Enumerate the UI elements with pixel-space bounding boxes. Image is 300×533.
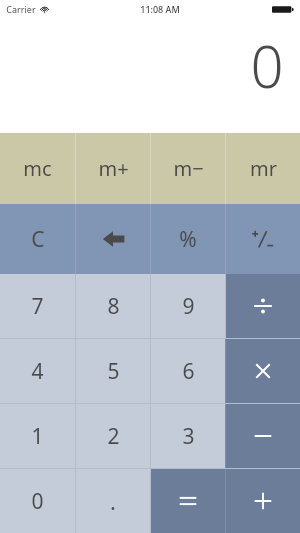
staticText: 1 bbox=[31, 422, 44, 451]
button[interactable]: 9 bbox=[151, 274, 225, 338]
button[interactable]: 5 bbox=[76, 339, 150, 403]
staticText: 2 bbox=[107, 422, 120, 451]
button[interactable]: 1 bbox=[0, 404, 75, 468]
button[interactable]: m+ bbox=[76, 133, 150, 204]
staticText: 6 bbox=[182, 357, 195, 386]
staticText: . bbox=[110, 486, 116, 516]
staticText: 9 bbox=[182, 292, 195, 321]
staticText: mr bbox=[250, 155, 277, 182]
staticText: % bbox=[179, 225, 197, 254]
staticText: Carrier bbox=[6, 3, 36, 15]
button[interactable]: Add bbox=[226, 469, 300, 533]
button[interactable]: C bbox=[0, 204, 75, 274]
staticText: 5 bbox=[107, 357, 120, 386]
button[interactable]: mc bbox=[0, 133, 75, 204]
button[interactable]: 3 bbox=[151, 404, 225, 468]
staticText: 8 bbox=[107, 292, 120, 321]
button[interactable]: Multiply bbox=[226, 339, 300, 403]
button[interactable]: 8 bbox=[76, 274, 150, 338]
staticText: m+ bbox=[98, 155, 129, 182]
button[interactable]: m− bbox=[151, 133, 225, 204]
button[interactable]: 2 bbox=[76, 404, 150, 468]
button[interactable]: 0 bbox=[0, 469, 75, 533]
staticText: 11:08 AM bbox=[140, 3, 180, 15]
button[interactable]: Plus minus sign bbox=[226, 204, 300, 274]
button[interactable]: . bbox=[76, 469, 150, 533]
button[interactable]: % bbox=[151, 204, 225, 274]
button[interactable]: Divide bbox=[226, 274, 300, 338]
button[interactable]: Subtract bbox=[226, 404, 300, 468]
staticText: C bbox=[31, 225, 45, 254]
button[interactable]: 6 bbox=[151, 339, 225, 403]
button[interactable]: Backspace bbox=[76, 204, 150, 274]
staticText: 0 bbox=[31, 487, 44, 516]
button[interactable]: 7 bbox=[0, 274, 75, 338]
staticText: m− bbox=[173, 155, 204, 182]
button[interactable]: 4 bbox=[0, 339, 75, 403]
staticText: 7 bbox=[31, 292, 44, 321]
button[interactable]: mr bbox=[226, 133, 300, 204]
staticText: 4 bbox=[31, 357, 44, 386]
staticText: 3 bbox=[182, 422, 195, 451]
button[interactable]: Equals bbox=[151, 469, 225, 533]
staticText: mc bbox=[23, 155, 52, 182]
staticText: 0 bbox=[250, 26, 284, 105]
